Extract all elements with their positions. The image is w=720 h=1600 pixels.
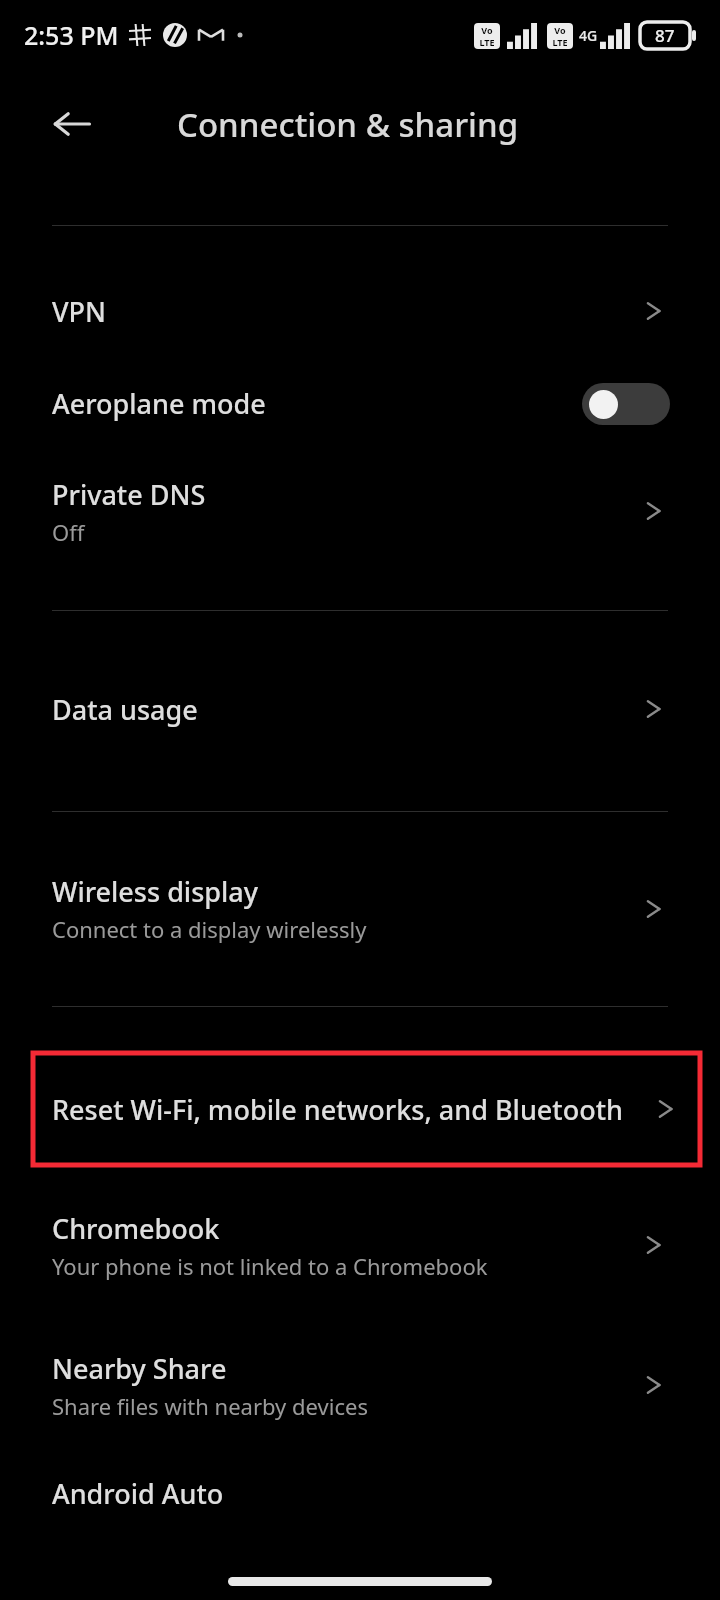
staticText: Data usage <box>52 691 198 728</box>
staticText: Vo <box>481 24 493 36</box>
staticText: Connect to a display wirelessly <box>52 914 367 944</box>
button[interactable]: Android Auto <box>0 1475 720 1515</box>
staticText: Off <box>52 517 85 547</box>
staticText: Private DNS <box>52 476 206 513</box>
staticText: Android Auto <box>52 1475 224 1512</box>
button[interactable]: VPN <box>0 271 720 351</box>
staticText: 2:53 PM <box>24 18 119 52</box>
staticText: 87 <box>655 24 675 47</box>
staticText: Aeroplane mode <box>52 385 266 422</box>
button[interactable]: Chromebook <box>0 1193 720 1297</box>
staticText: Reset Wi-Fi, mobile networks, and Blueto… <box>52 1091 623 1128</box>
staticText: 4G <box>579 26 598 45</box>
staticText: Connection & sharing <box>177 102 519 147</box>
staticText: Nearby Share <box>52 1350 227 1387</box>
button[interactable]: Wireless display <box>0 856 720 961</box>
staticText: Wireless display <box>52 873 259 910</box>
button[interactable]: Aeroplane mode <box>0 351 720 456</box>
button[interactable]: Aeroplane mode toggle <box>582 383 670 425</box>
staticText: Chromebook <box>52 1210 220 1247</box>
button[interactable]: Back <box>44 96 100 152</box>
button[interactable]: Nearby Share <box>0 1333 720 1437</box>
button[interactable]: Reset Wi-Fi, mobile networks, and Blueto… <box>33 1053 700 1165</box>
staticText: Your phone is not linked to a Chromebook <box>52 1251 488 1281</box>
staticText: Vo <box>554 24 566 36</box>
staticText: VPN <box>52 293 107 330</box>
staticText: Share files with nearby devices <box>52 1391 368 1421</box>
button[interactable]: Private DNS <box>0 456 720 566</box>
staticText: LTE <box>479 36 495 48</box>
button[interactable]: Data usage <box>0 659 720 759</box>
staticText: LTE <box>552 36 568 48</box>
